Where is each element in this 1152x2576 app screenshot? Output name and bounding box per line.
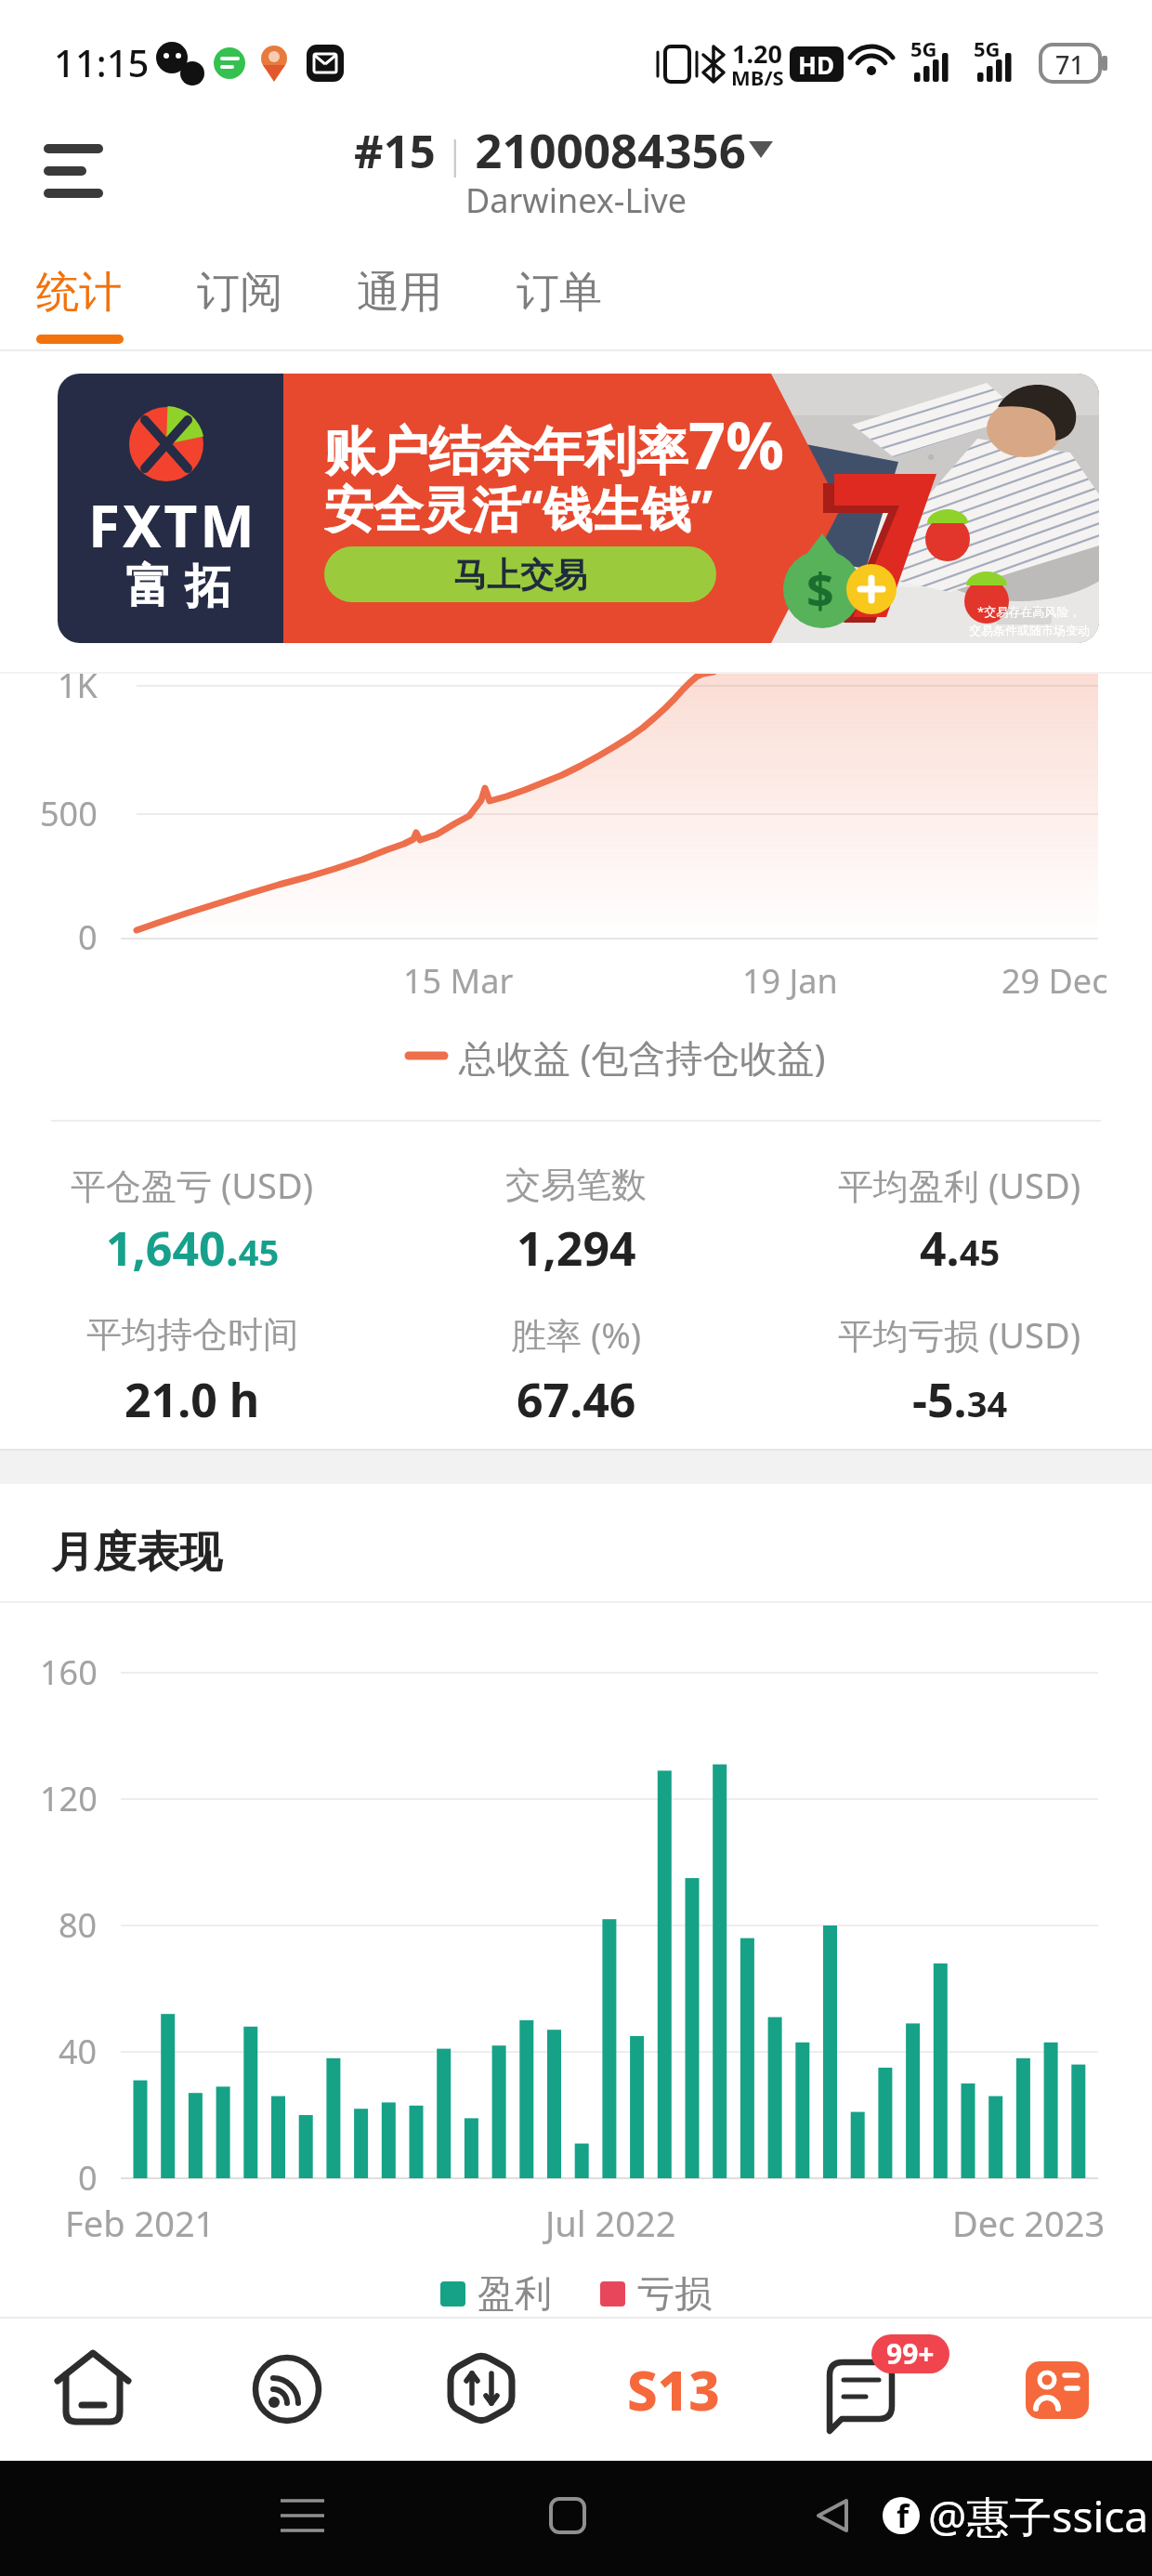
staticText: 0: [78, 914, 98, 960]
button[interactable]: FXTM: [58, 374, 1099, 643]
staticText: Dec 2023: [952, 2199, 1106, 2247]
staticText: 平均盈利 (USD): [838, 1161, 1081, 1209]
staticText: 富拓: [119, 558, 238, 616]
staticText: 99+: [886, 2334, 935, 2372]
staticText: 71: [1055, 47, 1084, 82]
staticText: 29 Dec: [1001, 958, 1108, 1004]
staticText: 80: [59, 1902, 98, 1948]
button[interactable]: 马上交易: [324, 546, 716, 602]
staticText: 订阅: [197, 266, 282, 320]
staticText: -5.34: [912, 1368, 1008, 1431]
staticText: HD: [798, 48, 834, 81]
staticText: 11:15: [54, 37, 150, 87]
staticText: Jul 2022: [545, 2199, 676, 2247]
staticText: 平均持仓时间: [86, 1312, 298, 1357]
staticText: Darwinex-Live: [465, 177, 687, 223]
staticText: @惠子ssica: [928, 2487, 1149, 2545]
staticText: 月度表现: [51, 1526, 222, 1580]
staticText: 40: [59, 2029, 98, 2074]
staticText: 67.46: [517, 1368, 636, 1431]
staticText: 平仓盈亏 (USD): [71, 1161, 314, 1209]
staticText: 160: [40, 1649, 98, 1695]
staticText: f: [897, 2494, 910, 2537]
staticText: 0: [78, 2155, 98, 2201]
staticText: 亏损: [637, 2270, 712, 2317]
staticText: 平均亏损 (USD): [838, 1310, 1081, 1359]
staticText: 马上交易: [453, 554, 587, 596]
staticText: 订单: [517, 266, 602, 320]
staticText: $: [806, 557, 834, 623]
staticText: 1,294: [517, 1216, 636, 1280]
button[interactable]: [353, 116, 799, 181]
staticText: #15 | 2100084356: [354, 117, 746, 181]
button[interactable]: [385, 2320, 577, 2459]
staticText: 5G: [910, 34, 937, 62]
button[interactable]: 统计: [5, 242, 153, 344]
staticText: 胜率 (%): [511, 1310, 642, 1359]
staticText: 交易笔数: [505, 1163, 647, 1207]
staticText: 1.20: [732, 36, 782, 71]
button[interactable]: [192, 2320, 385, 2459]
button[interactable]: [33, 121, 121, 209]
staticText: Feb 2021: [65, 2199, 216, 2247]
staticText: 通用: [357, 266, 442, 320]
staticText: 4.45: [920, 1216, 1001, 1280]
staticText: 1K: [58, 663, 98, 708]
button[interactable]: [0, 2320, 192, 2459]
staticText: 1,640.45: [106, 1216, 280, 1280]
staticText: 盈利: [478, 2270, 552, 2317]
staticText: 500: [40, 791, 98, 836]
staticText: 统计: [36, 266, 122, 320]
staticText: 120: [40, 1776, 98, 1821]
staticText: 交易条件或随市场变动: [969, 623, 1090, 637]
staticText: S13: [627, 2353, 720, 2426]
staticText: 19 Jan: [742, 958, 838, 1004]
staticText: 安全灵活“钱生钱”: [324, 474, 713, 535]
staticText: 21.0 h: [124, 1368, 260, 1431]
button[interactable]: 订单: [485, 242, 634, 344]
button[interactable]: S13: [577, 2320, 769, 2459]
staticText: MB/S: [731, 63, 784, 91]
button[interactable]: [962, 2320, 1152, 2459]
staticText: 账户结余年利率7%: [324, 400, 785, 488]
button[interactable]: 订阅: [165, 242, 314, 344]
staticText: 5G: [974, 34, 1001, 62]
staticText: 15 Mar: [403, 958, 514, 1004]
staticText: 总收益 (包含持仓收益): [459, 1032, 826, 1083]
staticText: FXTM: [88, 486, 257, 564]
button[interactable]: 通用: [325, 242, 474, 344]
button[interactable]: [769, 2320, 962, 2459]
staticText: *交易存在高风险，: [977, 603, 1081, 620]
